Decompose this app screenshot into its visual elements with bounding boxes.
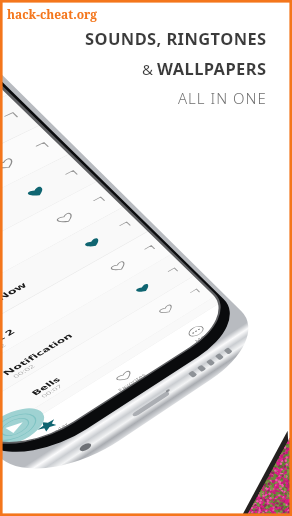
staticText: hack-cheat.org <box>7 6 98 22</box>
staticText: & <box>142 59 157 79</box>
staticText: WALLPAPERS <box>157 57 267 79</box>
staticText: ALL IN ONE <box>178 88 267 108</box>
staticText: SOUNDS, RINGTONES <box>85 27 267 49</box>
